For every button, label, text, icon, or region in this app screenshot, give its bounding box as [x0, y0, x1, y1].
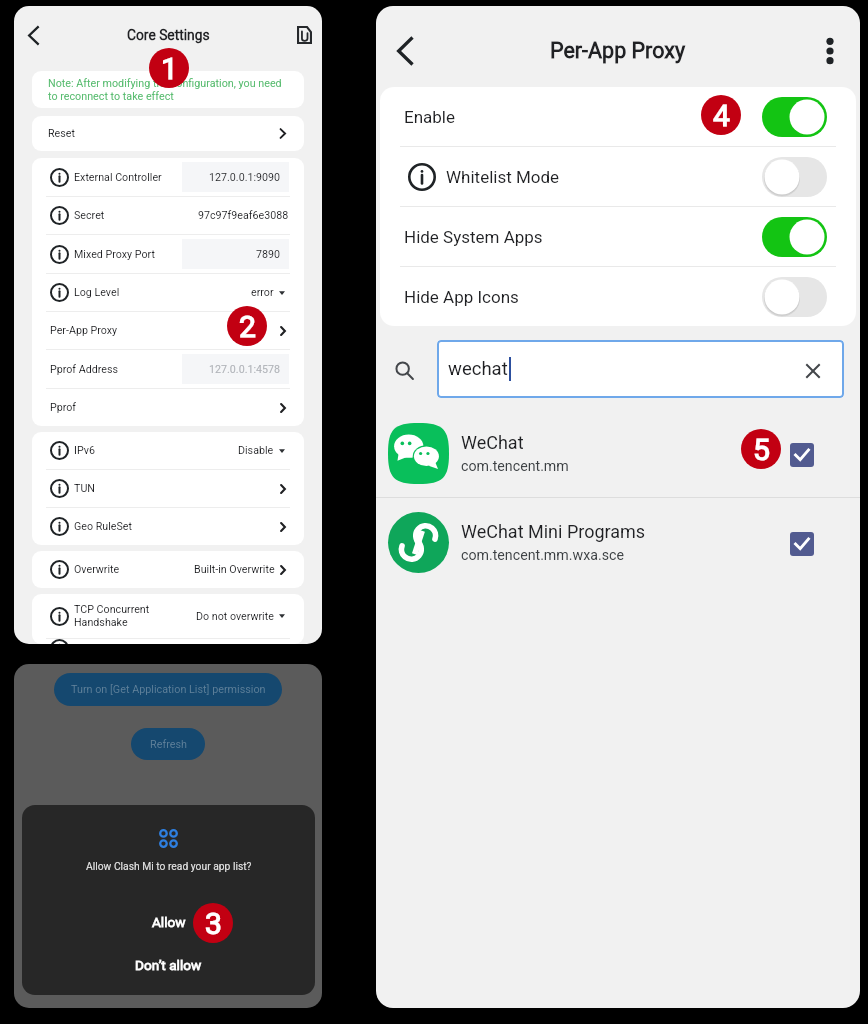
staticText: 3	[205, 906, 222, 941]
button[interactable]: TCP Concurrent Handshake	[32, 594, 304, 638]
staticText: WeChat	[461, 432, 524, 453]
button[interactable]: Enabled	[762, 217, 827, 257]
button[interactable]: Per-App Proxy	[32, 312, 304, 349]
staticText: Overwrite	[74, 563, 120, 576]
staticText: Allow Clash Mi to read your app list?	[86, 860, 252, 872]
button[interactable]: Allow	[22, 909, 315, 935]
button[interactable]: Don’t allow	[22, 952, 315, 978]
button[interactable]: WeChat Mini Programs	[376, 498, 860, 586]
button[interactable]: Enabled	[762, 97, 827, 137]
staticText: Secret	[74, 209, 105, 222]
staticText: wechat	[448, 358, 508, 380]
staticText: TCP Concurrent Handshake	[74, 603, 150, 629]
staticText: com.tencent.mm	[461, 458, 569, 475]
staticText: Log Level	[74, 286, 120, 299]
button[interactable]: Log Level	[32, 274, 304, 311]
staticText: Pprof	[50, 401, 77, 414]
button[interactable]: IPv6	[32, 432, 304, 469]
staticText: 5	[753, 432, 770, 467]
button[interactable]: Secret	[32, 197, 304, 234]
button[interactable]: Reset	[32, 116, 304, 151]
button[interactable]: Overwrite	[32, 551, 304, 588]
button[interactable]: Pprof	[32, 389, 304, 426]
button[interactable]: Refresh	[131, 728, 205, 760]
staticText: Allow	[152, 914, 186, 930]
staticText: Disable	[238, 444, 274, 457]
staticText: 7890	[256, 248, 281, 261]
staticText: Hide System Apps	[404, 227, 543, 247]
button[interactable]: Whitelist Mode	[380, 147, 856, 206]
button[interactable]: Mixed Proxy Port	[32, 235, 304, 273]
staticText: Core Settings	[127, 27, 210, 43]
staticText: Hide App Icons	[404, 287, 519, 307]
button[interactable]: Clear search	[800, 358, 826, 384]
button[interactable]: wechat	[437, 340, 844, 398]
staticText: 1	[161, 51, 178, 86]
staticText: com.tencent.mm.wxa.sce	[461, 547, 624, 564]
staticText: IPv6	[74, 444, 95, 457]
button[interactable]: Back	[383, 29, 427, 73]
other: Search	[392, 358, 418, 384]
staticText: Mixed Proxy Port	[74, 248, 155, 261]
staticText: Refresh	[150, 738, 187, 751]
staticText: Do not overwrite	[196, 610, 274, 623]
button[interactable]: Selected	[790, 443, 814, 467]
staticText: Built-in Overwrite	[194, 563, 275, 576]
staticText: Enable	[404, 107, 455, 127]
staticText: Per-App Proxy	[550, 38, 686, 63]
button[interactable]: Import configuration	[291, 22, 317, 48]
button[interactable]: Disabled	[762, 157, 827, 197]
staticText: Pprof Address	[50, 363, 118, 376]
staticText: Don’t allow	[135, 957, 202, 973]
staticText: WeChat Mini Programs	[461, 521, 646, 542]
button[interactable]: Hide System Apps	[380, 207, 856, 266]
staticText: Turn on [Get Application List] permissio…	[71, 683, 266, 696]
button[interactable]: TUN	[32, 470, 304, 507]
button[interactable]: Pprof Address	[32, 350, 304, 388]
button[interactable]: External Controller	[32, 158, 304, 196]
button[interactable]: Geo RuleSet	[32, 508, 304, 545]
staticText: 127.0.0.1:9090	[209, 171, 281, 184]
staticText: Geo RuleSet	[74, 520, 132, 533]
button[interactable]: Enable	[380, 87, 856, 146]
button[interactable]: Disabled	[762, 277, 827, 317]
staticText: External Controller	[74, 171, 162, 184]
button[interactable]: Turn on [Get Application List] permissio…	[54, 673, 282, 706]
staticText: Note: After modifying the configuration,…	[48, 77, 282, 103]
staticText: Per-App Proxy	[50, 324, 118, 337]
button[interactable]: More options	[813, 34, 847, 68]
staticText: Whitelist Mode	[446, 167, 560, 187]
staticText: Reset	[48, 127, 75, 140]
staticText: 97c97f9eaf6e3088	[198, 209, 289, 222]
staticText: error	[251, 286, 274, 299]
staticText: 127.0.0.1:4578	[209, 363, 281, 376]
button[interactable]: WeChat	[376, 409, 860, 497]
staticText: 2	[239, 309, 256, 344]
button[interactable]	[32, 639, 304, 644]
button[interactable]: Back	[19, 21, 47, 49]
staticText: TUN	[74, 482, 95, 495]
button[interactable]: Hide App Icons	[380, 267, 856, 326]
staticText: 4	[713, 98, 730, 133]
button[interactable]: Selected	[790, 532, 814, 556]
